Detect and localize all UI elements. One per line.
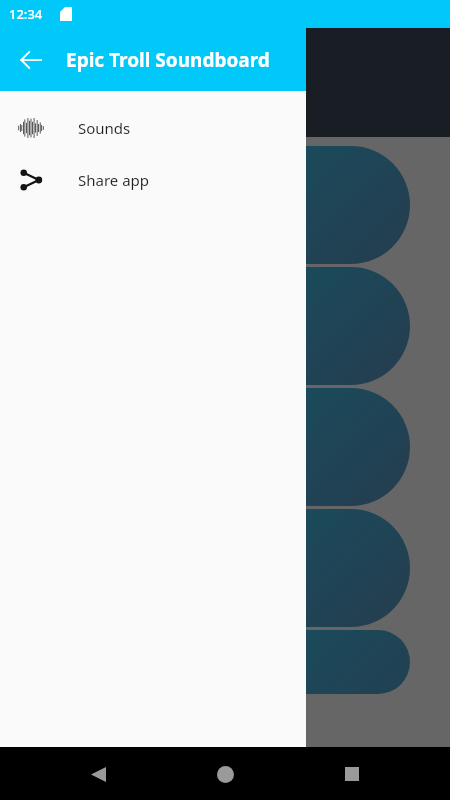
- button[interactable]: Back: [13, 42, 49, 78]
- button[interactable]: Recent apps: [332, 754, 372, 794]
- staticText: Sounds: [78, 118, 131, 138]
- button[interactable]: Sounds: [0, 102, 306, 154]
- button[interactable]: BOOGLY: [0, 146, 410, 264]
- staticText: 12:34: [9, 5, 43, 23]
- button[interactable]: O-HELLO: [0, 388, 410, 506]
- button[interactable]: Back: [78, 754, 118, 794]
- staticText: Share app: [78, 170, 150, 190]
- button[interactable]: WHAT UP?: [0, 267, 410, 385]
- button[interactable]: JA: [0, 630, 410, 694]
- staticText: Epic Troll Soundboard: [66, 47, 270, 73]
- button[interactable]: Share app: [0, 154, 306, 206]
- button[interactable]: Home: [205, 754, 245, 794]
- button[interactable]: APOYA 2: [0, 509, 410, 627]
